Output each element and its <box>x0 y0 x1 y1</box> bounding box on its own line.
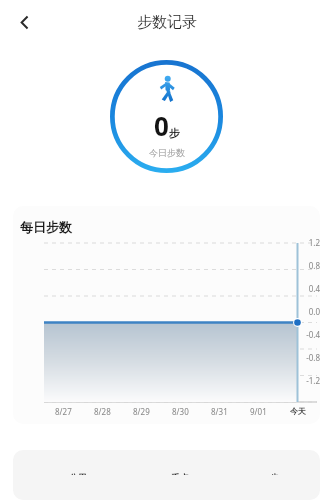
button[interactable]: 0.0 <box>13 472 116 476</box>
staticText: 步 <box>169 126 180 140</box>
button[interactable]: 0.0 <box>116 472 218 476</box>
staticText: 步数记录 <box>137 13 197 32</box>
staticText: 今天 <box>290 406 306 416</box>
staticText: 公里 <box>69 472 87 475</box>
staticText: 0 <box>154 108 169 143</box>
staticText: -0.4 <box>293 329 320 340</box>
staticText: -1.2 <box>293 375 320 386</box>
staticText: -0.8 <box>293 352 320 363</box>
staticText: 8/30 <box>172 406 189 417</box>
button[interactable]: 0 <box>218 472 320 476</box>
staticText: 1.2 <box>293 237 320 248</box>
staticText: 每日步数 <box>20 219 72 235</box>
staticText: 今日步数 <box>149 147 185 158</box>
staticText: 0.4 <box>293 283 320 294</box>
staticText: 千卡 <box>171 472 189 475</box>
staticText: 8/28 <box>94 406 111 417</box>
staticText: 8/27 <box>55 406 72 417</box>
button[interactable]: 0 <box>110 60 223 173</box>
staticText: 8/31 <box>211 406 228 417</box>
staticText: 步 <box>270 472 279 475</box>
staticText: 0.8 <box>293 260 320 271</box>
staticText: 0.0 <box>293 306 320 317</box>
button[interactable]: Back <box>4 2 44 42</box>
staticText: 9/01 <box>250 406 267 417</box>
staticText: 8/29 <box>133 406 150 417</box>
